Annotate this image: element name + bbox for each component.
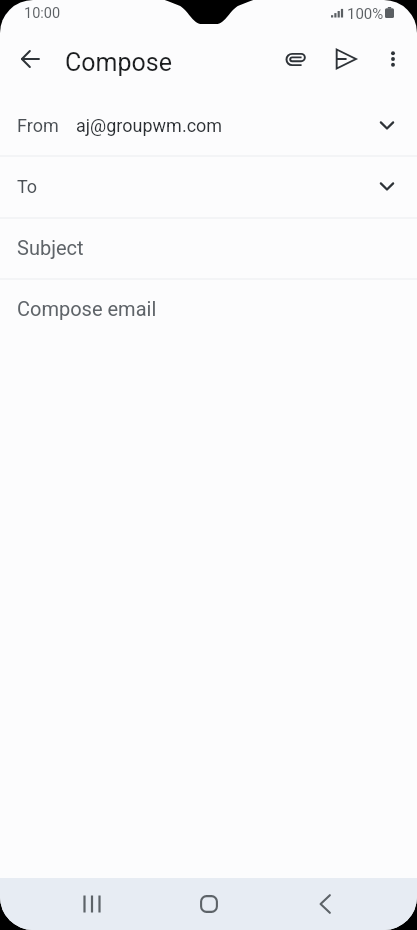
button[interactable]: More options [370, 36, 416, 82]
button[interactable]: Back [9, 36, 55, 82]
staticText: To [17, 176, 38, 197]
button[interactable]: Back [299, 878, 351, 930]
button[interactable]: Send [322, 36, 368, 82]
button[interactable]: Recent apps [66, 878, 118, 930]
button[interactable]: Attach file [272, 36, 318, 82]
staticText: aj@groupwm.com [76, 115, 223, 136]
button[interactable]: Expand recipients [367, 166, 407, 206]
button[interactable]: To [0, 156, 417, 217]
button[interactable]: From [0, 95, 417, 156]
button[interactable]: Expand recipients [367, 105, 407, 145]
button[interactable]: Home [183, 878, 235, 930]
button[interactable]: Compose email [0, 279, 417, 340]
button[interactable]: Subject [0, 218, 417, 279]
staticText: Subject [17, 236, 84, 259]
staticText: From [17, 115, 59, 136]
staticText: 10:00 [24, 5, 61, 22]
staticText: 100% [347, 5, 384, 23]
staticText: Compose [65, 48, 172, 77]
staticText: Compose email [17, 297, 157, 320]
